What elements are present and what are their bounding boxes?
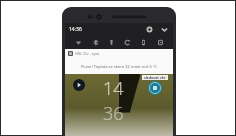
staticText: 14:36 <box>69 26 82 33</box>
button[interactable]: Wi-Fi <box>72 36 84 48</box>
button[interactable]: Bluetooth <box>89 36 101 48</box>
staticText: HSL Ov - syst <box>75 51 100 56</box>
button[interactable]: HSL Ov - syst <box>65 49 173 74</box>
button[interactable]: Rotation <box>137 36 149 48</box>
button[interactable]: Flashlight <box>105 36 117 48</box>
button[interactable]: Play <box>73 79 85 91</box>
button[interactable]: Weather widget <box>148 81 162 95</box>
staticText: Pozor! Teplota se skoro 32 minit noč 6 °… <box>68 64 170 69</box>
button[interactable]: Battery <box>154 36 166 48</box>
staticText: 36 <box>103 101 124 126</box>
button[interactable]: Expand <box>159 24 169 34</box>
button[interactable]: Sync <box>121 36 133 48</box>
staticText: sledovat vše <box>144 75 166 80</box>
staticText: 14 <box>103 76 124 101</box>
button[interactable]: Settings <box>144 24 154 34</box>
